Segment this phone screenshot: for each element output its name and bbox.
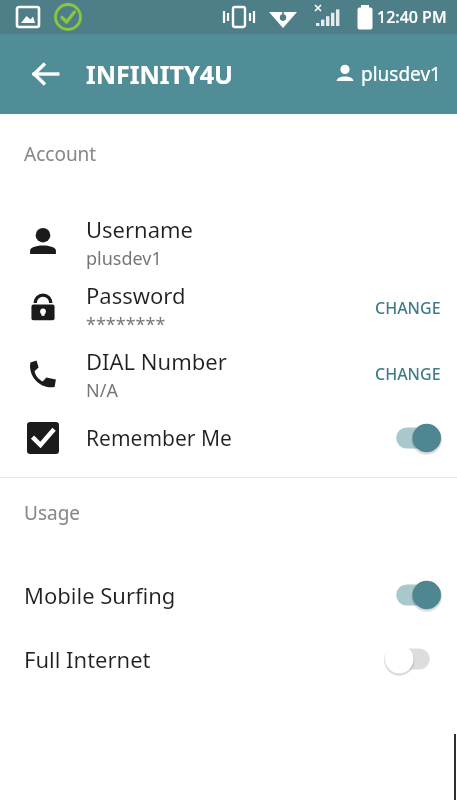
- button[interactable]: Full Internet toggle: [385, 642, 441, 676]
- staticText: plusdev1: [86, 246, 162, 271]
- staticText: plusdev1: [361, 61, 441, 87]
- staticText: CHANGE: [375, 363, 441, 385]
- staticText: Username: [86, 214, 194, 244]
- button[interactable]: Full Internet: [0, 636, 457, 682]
- staticText: N/A: [86, 378, 118, 403]
- staticText: CHANGE: [375, 297, 441, 319]
- button[interactable]: CHANGE: [359, 283, 457, 333]
- button[interactable]: Back: [22, 50, 70, 98]
- staticText: Account: [24, 141, 97, 167]
- staticText: Password: [86, 280, 186, 310]
- button[interactable]: Password: [0, 275, 457, 341]
- button[interactable]: Mobile Surfing: [0, 572, 457, 618]
- button[interactable]: DIAL Number: [0, 341, 457, 407]
- staticText: Mobile Surfing: [24, 580, 385, 610]
- button[interactable]: Remember Me toggle: [385, 421, 441, 455]
- staticText: INFINITY4U: [86, 57, 233, 91]
- staticText: ********: [86, 312, 166, 337]
- button[interactable]: Remember Me: [0, 407, 457, 469]
- button[interactable]: Username: [0, 209, 457, 275]
- staticText: Usage: [24, 500, 81, 526]
- staticText: 12:40 PM: [377, 6, 447, 28]
- button[interactable]: CHANGE: [359, 349, 457, 399]
- staticText: DIAL Number: [86, 346, 227, 376]
- button[interactable]: plusdev1: [330, 53, 445, 95]
- staticText: Full Internet: [24, 644, 385, 674]
- staticText: Remember Me: [86, 424, 385, 453]
- button[interactable]: Mobile Surfing toggle: [385, 578, 441, 612]
